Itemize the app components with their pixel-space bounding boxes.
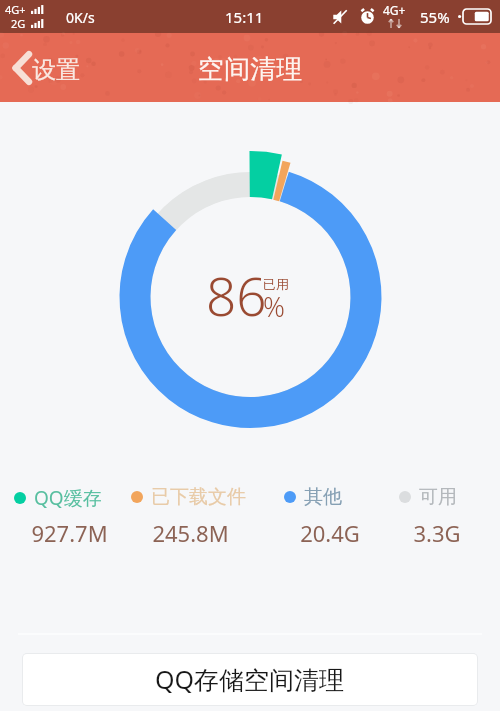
staticText: 已用: [263, 276, 289, 292]
staticText: 245.8M: [152, 518, 229, 548]
staticText: 可用: [419, 485, 457, 509]
staticText: 86: [206, 259, 267, 331]
staticText: QQ缓存: [34, 485, 102, 511]
staticText: 4G+: [383, 2, 406, 18]
staticText: 4G+: [5, 2, 26, 17]
staticText: 15:11: [225, 7, 264, 27]
staticText: 空间清理: [198, 53, 302, 86]
staticText: 2G: [11, 16, 26, 31]
button[interactable]: 返回设置: [6, 46, 84, 90]
staticText: 927.7M: [31, 518, 108, 548]
button[interactable]: 可用: [393, 485, 463, 509]
staticText: 3.3G: [413, 518, 461, 548]
staticText: QQ存储空间清理: [155, 662, 345, 696]
button[interactable]: 其他: [278, 485, 348, 509]
staticText: 0K/s: [66, 8, 95, 27]
staticText: 20.4G: [300, 518, 360, 548]
staticText: 已下载文件: [151, 485, 246, 509]
staticText: %: [263, 288, 285, 325]
button[interactable]: QQ存储空间清理: [23, 654, 477, 705]
button[interactable]: 已下载文件: [125, 485, 252, 509]
button[interactable]: QQ缓存: [8, 485, 108, 511]
staticText: 设置: [32, 55, 80, 85]
staticText: 55%: [420, 7, 450, 27]
staticText: 其他: [304, 485, 342, 509]
